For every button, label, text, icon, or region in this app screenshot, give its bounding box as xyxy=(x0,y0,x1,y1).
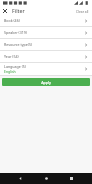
staticText: Filter xyxy=(12,7,25,14)
button[interactable]: Language (5) xyxy=(0,63,92,75)
button[interactable]: Clear all xyxy=(73,8,92,14)
staticText: Resource type(5) xyxy=(4,42,33,47)
button[interactable]: Year (54) xyxy=(0,51,92,62)
button[interactable]: Resource type(5) xyxy=(0,39,92,50)
staticText: Language (5) xyxy=(4,64,26,69)
button[interactable]: Recent apps xyxy=(67,174,76,183)
button[interactable]: Book (46) xyxy=(0,15,92,26)
staticText: Clear all xyxy=(76,9,89,13)
staticText: English xyxy=(4,69,16,74)
button[interactable]: Back xyxy=(16,174,25,183)
staticText: Speaker (319) xyxy=(4,30,27,35)
button[interactable]: Speaker (319) xyxy=(0,27,92,38)
staticText: Apply xyxy=(41,80,51,85)
button[interactable]: Close xyxy=(0,6,9,15)
staticText: Year (54) xyxy=(4,54,19,59)
button[interactable]: Apply xyxy=(2,78,90,86)
staticText: Book (46) xyxy=(4,18,20,23)
button[interactable]: Home xyxy=(42,174,51,183)
